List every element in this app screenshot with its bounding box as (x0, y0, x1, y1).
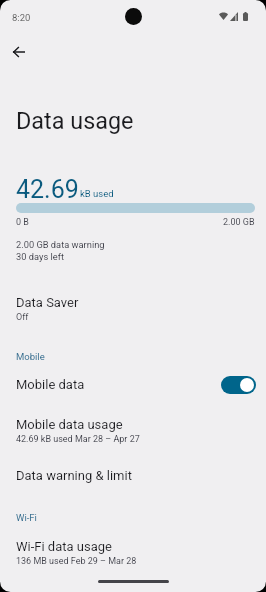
staticText: Mobile data (16, 377, 85, 392)
staticText: Wi‑Fi data usage (16, 539, 112, 554)
staticText: Off (16, 312, 29, 323)
button[interactable]: Back (2, 35, 35, 68)
staticText: 42.69 (16, 175, 79, 204)
staticText: 42.69 kB used Mar 28 – Apr 27 (16, 434, 140, 445)
staticText: Data usage (16, 107, 134, 134)
staticText: Data Saver (16, 295, 79, 310)
staticText: Wi‑Fi (16, 512, 37, 523)
staticText: Mobile data usage (16, 417, 123, 432)
button[interactable]: Mobile data (0, 368, 266, 410)
staticText: 8:20 (12, 12, 31, 23)
button[interactable]: Mobile data usage (0, 412, 266, 452)
staticText: Mobile (16, 351, 45, 362)
staticText: kB used (80, 188, 114, 199)
staticText: 136 MB used Feb 29 – Mar 28 (16, 556, 137, 567)
button[interactable]: Wi‑Fi data usage (0, 534, 266, 574)
staticText: 2.00 GB (223, 217, 255, 228)
staticText: 0 B (16, 217, 29, 228)
button[interactable]: Data warning & limit (0, 463, 266, 497)
staticText: Data warning & limit (16, 468, 132, 483)
button[interactable]: Data Saver (0, 290, 266, 328)
staticText: 2.00 GB data warning (16, 239, 105, 250)
staticText: 30 days left (16, 251, 64, 262)
